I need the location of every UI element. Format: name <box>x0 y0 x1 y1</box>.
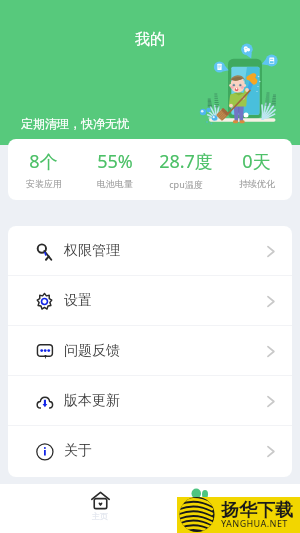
button[interactable]: 55% <box>79 139 150 200</box>
staticText: 安装应用 <box>26 178 62 189</box>
button[interactable]: 问题反馈 <box>8 326 292 376</box>
staticText: 8个 <box>29 149 58 174</box>
staticText: 设置 <box>64 292 92 310</box>
staticText: 0天 <box>242 149 271 174</box>
button[interactable]: 版本更新 <box>8 376 292 426</box>
button[interactable]: 0天 <box>221 139 292 200</box>
staticText: YANGHUA.NET <box>221 517 288 529</box>
staticText: 55% <box>97 149 133 174</box>
staticText: 主页 <box>92 511 108 521</box>
staticText: 28.7度 <box>159 149 213 174</box>
staticText: 问题反馈 <box>64 342 120 360</box>
staticText: 持续优化 <box>239 178 275 189</box>
button[interactable]: 8个 <box>8 139 79 200</box>
staticText: 版本更新 <box>64 392 120 410</box>
button[interactable]: 设置 <box>8 276 292 326</box>
button[interactable]: 关于 <box>8 426 292 476</box>
staticText: 我的 <box>135 30 165 49</box>
staticText: 扬华下载 <box>221 499 293 522</box>
staticText: 定期清理，快净无忧 <box>21 116 129 131</box>
staticText: cpu温度 <box>169 178 203 190</box>
staticText: 电池电量 <box>97 178 133 189</box>
staticText: 关于 <box>64 442 92 460</box>
button[interactable]: 主页 <box>76 484 124 521</box>
staticText: 权限管理 <box>64 242 120 260</box>
button[interactable]: 权限管理 <box>8 226 292 276</box>
button[interactable]: 28.7度 <box>150 139 221 200</box>
